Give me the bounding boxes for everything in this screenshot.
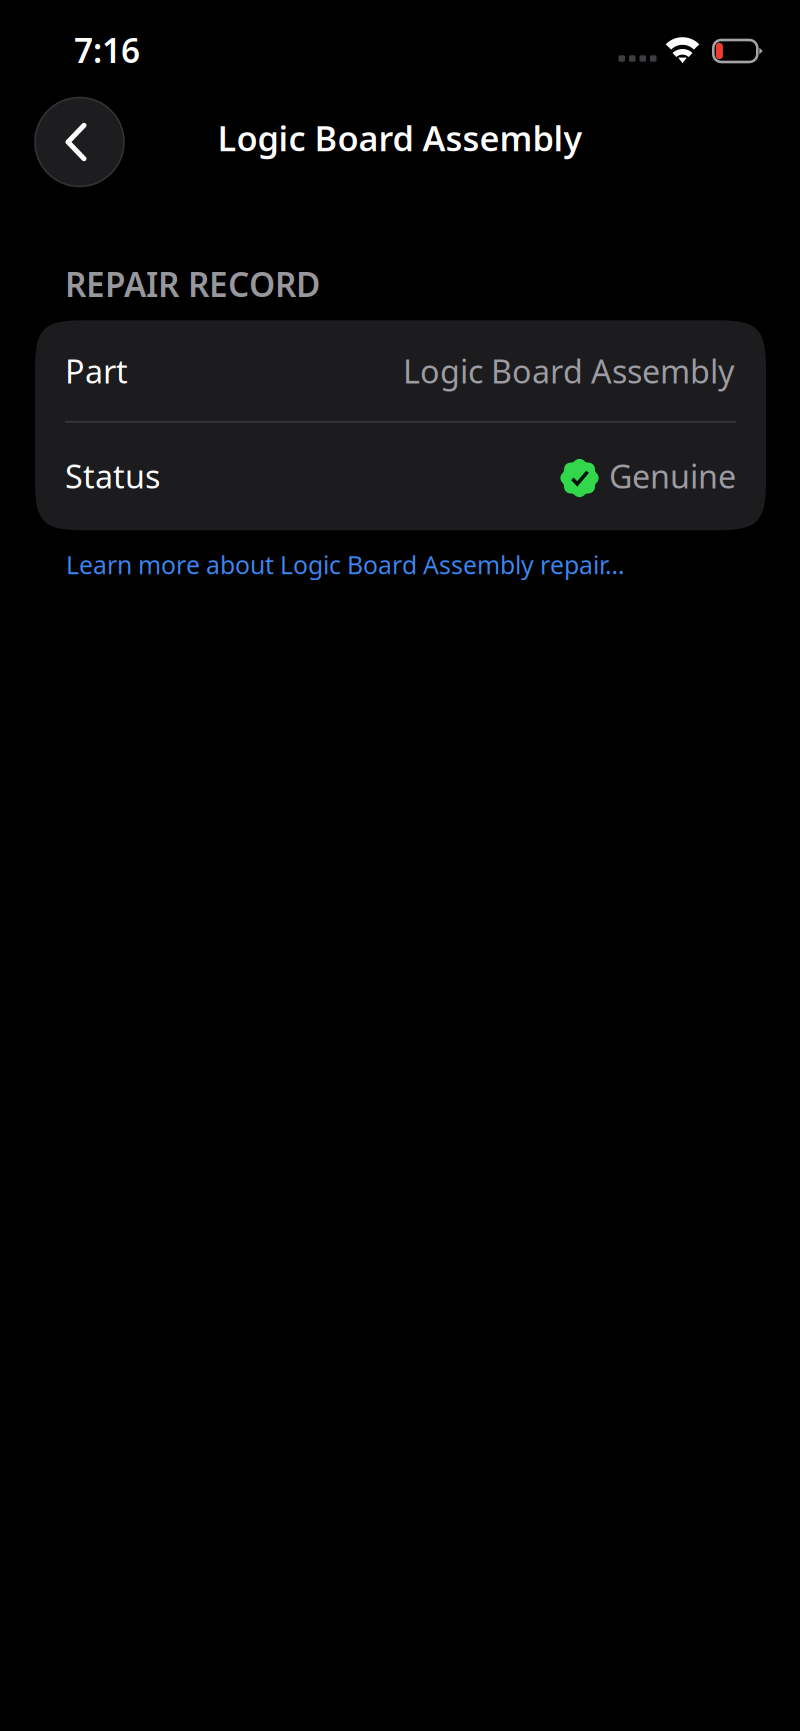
button[interactable]: Part: [35, 321, 766, 421]
staticText: Logic Board Assembly: [403, 350, 734, 392]
staticText: Learn more about Logic Board Assembly re…: [66, 548, 625, 581]
button[interactable]: Back: [35, 97, 124, 186]
staticText: Part: [65, 350, 128, 392]
button[interactable]: Learn more about Logic Board Assembly re…: [0, 548, 625, 581]
staticText: Logic Board Assembly: [217, 115, 582, 161]
button[interactable]: Status: [35, 422, 766, 529]
staticText: Status: [65, 455, 160, 497]
staticText: 7:16: [74, 28, 140, 72]
staticText: Genuine: [609, 455, 736, 497]
staticText: REPAIR RECORD: [65, 262, 320, 306]
